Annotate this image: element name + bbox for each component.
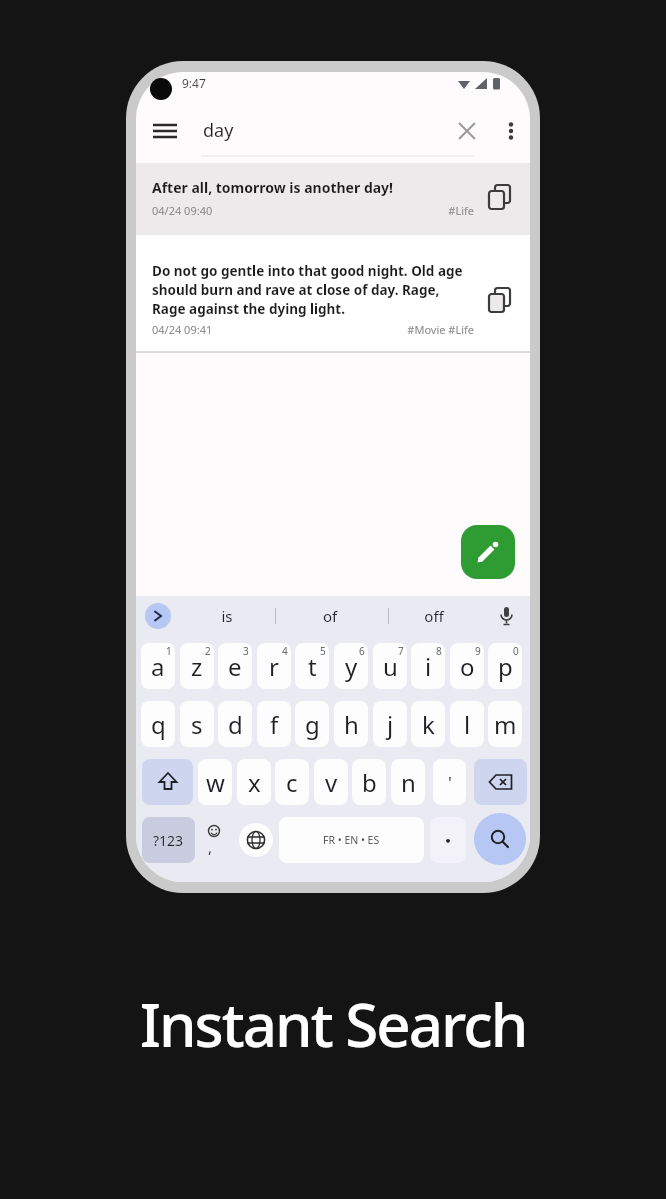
button[interactable]: s (180, 701, 214, 747)
staticText: k (422, 708, 435, 741)
button[interactable] (474, 759, 527, 805)
button[interactable]: i (411, 643, 445, 689)
staticText: f (270, 708, 279, 741)
staticText: 04/24 09:41 (152, 322, 213, 337)
button[interactable] (142, 759, 193, 805)
staticText: h (344, 708, 359, 741)
staticText: 7 (398, 644, 404, 658)
staticText: Do not go gentle into that good night. O… (152, 262, 463, 280)
staticText: Instant Search (0, 983, 666, 1065)
staticText: a (151, 650, 165, 683)
staticText: m (494, 708, 517, 741)
button[interactable]: Do not go gentle into that good night. O… (136, 235, 530, 351)
button[interactable] (500, 607, 513, 626)
staticText: 8 (436, 644, 442, 658)
staticText: l (464, 708, 471, 741)
button[interactable] (459, 123, 475, 139)
button[interactable]: y (334, 643, 368, 689)
staticText: v (325, 766, 338, 799)
button[interactable] (153, 120, 177, 142)
staticText: e (228, 650, 242, 683)
staticText: FR • EN • ES (323, 833, 380, 847)
button[interactable]: k (411, 701, 445, 747)
button[interactable] (430, 817, 466, 863)
button[interactable]: , (200, 817, 234, 863)
staticText: 6 (359, 644, 365, 658)
staticText: d (228, 708, 243, 741)
button[interactable]: FR • EN • ES (279, 817, 424, 863)
button[interactable]: m (488, 701, 522, 747)
button[interactable]: z (180, 643, 214, 689)
staticText: 4 (282, 644, 288, 658)
staticText: 5 (320, 644, 326, 658)
staticText: o (460, 650, 475, 683)
button[interactable]: h (334, 701, 368, 747)
staticText: g (305, 708, 320, 741)
staticText: w (206, 766, 225, 799)
staticText: ?123 (153, 831, 184, 850)
staticText: , (208, 837, 213, 857)
staticText: t (308, 650, 317, 683)
staticText: y (345, 650, 358, 683)
staticText: q (151, 708, 166, 741)
button[interactable]: n (391, 759, 425, 805)
button[interactable]: u (373, 643, 407, 689)
button[interactable]: day (136, 110, 530, 152)
staticText: 2 (205, 644, 211, 658)
staticText: x (248, 766, 261, 799)
button[interactable]: w (198, 759, 232, 805)
staticText: 9 (475, 644, 481, 658)
button[interactable]: of (290, 606, 370, 626)
staticText: Rage against the dying light. (152, 300, 346, 318)
button[interactable]: f (257, 701, 291, 747)
button[interactable] (508, 122, 514, 140)
staticText: u (383, 650, 398, 683)
button[interactable]: b (352, 759, 386, 805)
button[interactable]: r (257, 643, 291, 689)
staticText: #Movie #Life (376, 322, 474, 337)
button[interactable]: off (394, 606, 474, 626)
staticText: i (425, 650, 432, 683)
staticText: s (191, 708, 203, 741)
button[interactable]: ' (433, 759, 466, 805)
button[interactable]: p (488, 643, 522, 689)
button[interactable]: t (295, 643, 329, 689)
button[interactable] (474, 813, 526, 865)
button[interactable]: is (187, 606, 267, 626)
button[interactable] (239, 823, 273, 857)
staticText: r (269, 650, 279, 683)
button[interactable]: j (373, 701, 407, 747)
button[interactable]: c (275, 759, 309, 805)
staticText: should burn and rave at close of day. Ra… (152, 281, 440, 299)
staticText: p (498, 650, 513, 683)
button[interactable]: After all, tomorrow is another day! (136, 163, 530, 235)
staticText: ' (448, 771, 452, 794)
staticText: z (191, 650, 203, 683)
button[interactable]: a (141, 643, 175, 689)
button[interactable]: ?123 (142, 817, 195, 863)
button[interactable]: d (218, 701, 252, 747)
staticText: After all, tomorrow is another day! (152, 178, 394, 197)
staticText: c (286, 766, 298, 799)
button[interactable]: o (450, 643, 484, 689)
button[interactable]: x (237, 759, 271, 805)
staticText: 1 (166, 644, 172, 658)
button[interactable] (461, 525, 515, 579)
staticText: n (401, 766, 416, 799)
staticText: 9:47 (182, 75, 206, 91)
staticText: j (387, 708, 394, 741)
button[interactable]: q (141, 701, 175, 747)
staticText: day (203, 118, 234, 143)
button[interactable]: e (218, 643, 252, 689)
button[interactable]: g (295, 701, 329, 747)
staticText: #Life (396, 203, 474, 218)
button[interactable]: v (314, 759, 348, 805)
staticText: 3 (243, 644, 249, 658)
button[interactable] (145, 603, 171, 629)
staticText: b (362, 766, 377, 799)
staticText: 04/24 09:40 (152, 203, 213, 218)
staticText: 0 (513, 644, 519, 658)
button[interactable]: l (450, 701, 484, 747)
